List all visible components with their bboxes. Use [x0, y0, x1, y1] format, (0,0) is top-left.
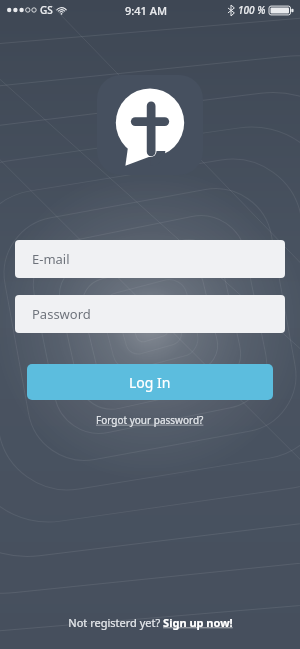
- button[interactable]: E-mail: [15, 240, 285, 278]
- staticText: GS: [40, 3, 53, 17]
- button[interactable]: Forgot your password?: [90, 411, 210, 429]
- staticText: Forgot your password?: [96, 413, 204, 427]
- button[interactable]: Password: [15, 295, 285, 333]
- button[interactable]: Log In: [27, 364, 273, 400]
- staticText: Password: [32, 305, 91, 323]
- staticText: 100 %: [238, 3, 266, 17]
- staticText: E-mail: [32, 250, 70, 268]
- staticText: Not registerd yet? Sign up now!: [68, 615, 233, 630]
- staticText: 9:41 AM: [125, 3, 168, 18]
- staticText: Log In: [129, 373, 171, 392]
- button[interactable]: Not registerd yet? Sign up now!: [62, 613, 239, 632]
